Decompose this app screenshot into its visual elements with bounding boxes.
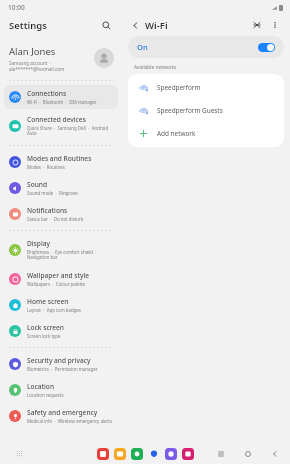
button[interactable]: Location — [4, 378, 118, 402]
staticText: Quick Share · Samsung DeX · Android Auto — [27, 125, 114, 137]
staticText: Add network — [157, 129, 196, 138]
button[interactable]: Connections — [4, 85, 118, 109]
staticText: 10:00 — [8, 3, 25, 12]
staticText: Connected devices — [27, 115, 86, 124]
staticText: Sound — [27, 180, 48, 189]
button[interactable]: App — [182, 448, 194, 460]
staticText: Medical info · Wireless emergency alerts — [27, 418, 113, 424]
button[interactable]: Recents — [215, 448, 226, 459]
button[interactable]: App — [131, 448, 143, 460]
button[interactable]: Speedperform Guests — [128, 99, 284, 122]
staticText: Speedperform Guests — [157, 106, 223, 115]
staticText: Home screen — [27, 297, 69, 306]
button[interactable]: Connected devices — [4, 111, 118, 141]
staticText: Display — [27, 239, 50, 248]
staticText: Brightness · Eye comfort shield · Naviga… — [27, 249, 114, 261]
button[interactable]: Sound — [4, 176, 118, 200]
button[interactable]: Wi-Fi scan — [250, 18, 264, 32]
button[interactable]: App — [148, 448, 160, 460]
button[interactable]: Home screen — [4, 293, 118, 317]
staticText: Security and privacy — [27, 356, 91, 365]
button[interactable]: Home — [242, 448, 253, 459]
staticText: Wi-Fi · Bluetooth · SIM manager — [27, 99, 97, 105]
staticText: ala*******@hotmail.com — [9, 66, 65, 72]
staticText: Wallpaper and style — [27, 271, 90, 280]
button[interactable]: Search — [98, 17, 114, 33]
staticText: Screen lock type — [27, 333, 61, 339]
staticText: Settings — [9, 19, 98, 32]
staticText: Wi-Fi — [145, 19, 250, 32]
button[interactable]: Alan Jones — [9, 36, 114, 80]
staticText: Alan Jones — [9, 45, 56, 58]
button[interactable]: Lock screen — [4, 319, 118, 343]
staticText: Sound mode · Ringtone — [27, 190, 78, 196]
button[interactable]: Speedperform — [128, 76, 284, 99]
button[interactable]: Display — [4, 235, 118, 265]
button[interactable]: Security and privacy — [4, 352, 118, 376]
staticText: Biometrics · Permission manager — [27, 366, 98, 372]
staticText: Notifications — [27, 206, 68, 215]
staticText: Samsung account · — [9, 60, 52, 66]
staticText: Modes · Routines — [27, 164, 65, 170]
button[interactable]: On — [128, 36, 284, 58]
staticText: Safety and emergency — [27, 408, 98, 417]
button[interactable]: Modes and Routines — [4, 150, 118, 174]
button[interactable]: Back — [269, 448, 280, 459]
staticText: Wallpapers · Colour palette — [27, 281, 86, 287]
button[interactable]: Safety and emergency — [4, 404, 118, 428]
button[interactable]: Back — [128, 18, 142, 32]
staticText: Location requests — [27, 392, 64, 398]
button[interactable]: App — [165, 448, 177, 460]
staticText: Layout · App icon badges — [27, 307, 81, 313]
button[interactable]: Notifications — [4, 202, 118, 226]
staticText: Location — [27, 382, 55, 391]
button[interactable]: All apps — [14, 448, 25, 459]
button[interactable]: Add network — [128, 122, 284, 145]
button[interactable]: App — [97, 448, 109, 460]
staticText: Speedperform — [157, 83, 201, 92]
staticText: On — [137, 42, 258, 52]
button[interactable]: More options — [268, 18, 282, 32]
staticText: Status bar · Do not disturb — [27, 216, 84, 222]
button[interactable]: App — [114, 448, 126, 460]
staticText: Available networks — [134, 64, 177, 71]
staticText: Modes and Routines — [27, 154, 92, 163]
staticText: Connections — [27, 89, 67, 98]
staticText: Lock screen — [27, 323, 64, 332]
button[interactable]: Wallpaper and style — [4, 267, 118, 291]
